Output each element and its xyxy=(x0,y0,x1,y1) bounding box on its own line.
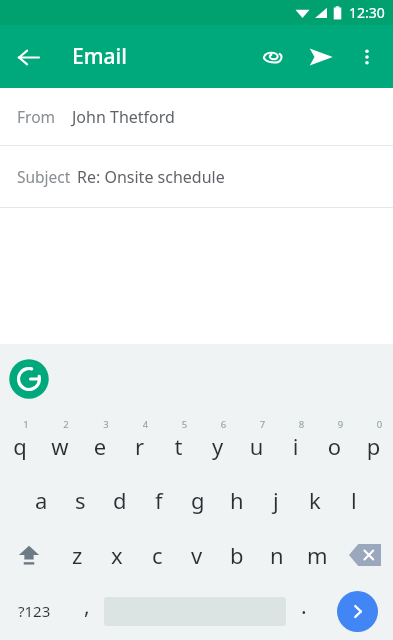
button[interactable]: x xyxy=(97,527,137,582)
staticText: j xyxy=(273,485,279,515)
staticText: y xyxy=(198,431,237,461)
button[interactable]: s xyxy=(61,472,100,527)
staticText: l xyxy=(351,485,357,515)
button[interactable]: d xyxy=(100,472,139,527)
staticText: p xyxy=(354,431,393,461)
button[interactable]: Back xyxy=(0,29,56,85)
button[interactable]: Space xyxy=(104,582,286,640)
button[interactable]: Backspace xyxy=(337,527,393,582)
staticText: 0 xyxy=(360,418,393,431)
staticText: u xyxy=(237,431,276,461)
button[interactable]: 5 xyxy=(159,416,198,472)
staticText: Re: Onsite schedule xyxy=(77,166,225,188)
button[interactable]: 8 xyxy=(276,416,315,472)
staticText: m xyxy=(307,540,328,570)
button[interactable]: Subject xyxy=(0,146,393,207)
staticText: r xyxy=(120,431,159,461)
staticText: From xyxy=(17,106,56,127)
button[interactable]: Grammarly xyxy=(8,358,50,400)
staticText: 7 xyxy=(243,418,282,431)
button[interactable]: Send xyxy=(297,33,345,81)
button[interactable]: b xyxy=(217,527,257,582)
staticText: Subject xyxy=(17,166,71,187)
button[interactable]: c xyxy=(137,527,177,582)
staticText: ?123 xyxy=(18,601,51,621)
button[interactable]: h xyxy=(217,472,256,527)
staticText: 3 xyxy=(86,418,126,431)
staticText: 4 xyxy=(126,418,165,431)
staticText: 12:30 xyxy=(349,3,385,22)
staticText: n xyxy=(270,540,284,570)
button[interactable]: j xyxy=(256,472,295,527)
button[interactable]: 2 xyxy=(40,416,80,472)
button[interactable]: 9 xyxy=(315,416,354,472)
button[interactable]: 0 xyxy=(354,416,393,472)
button[interactable]: m xyxy=(297,527,337,582)
button[interactable]: 1 xyxy=(0,416,40,472)
staticText: i xyxy=(276,431,315,461)
staticText: b xyxy=(230,540,244,570)
staticText: 8 xyxy=(282,418,321,431)
staticText: d xyxy=(113,485,127,515)
button[interactable]: Attach file xyxy=(249,33,297,81)
button[interactable]: 6 xyxy=(198,416,237,472)
staticText: , xyxy=(84,592,90,621)
staticText: 9 xyxy=(321,418,360,431)
staticText: 2 xyxy=(46,418,86,431)
staticText: 5 xyxy=(165,418,204,431)
staticText: Email xyxy=(72,42,127,71)
staticText: q xyxy=(0,431,40,461)
staticText: k xyxy=(309,485,321,515)
staticText: t xyxy=(159,431,198,461)
staticText: s xyxy=(75,485,86,515)
staticText: v xyxy=(191,540,203,570)
button[interactable]: 3 xyxy=(80,416,120,472)
staticText: h xyxy=(230,485,244,515)
staticText: a xyxy=(35,485,48,515)
button[interactable]: More options xyxy=(345,35,389,79)
staticText: John Thetford xyxy=(72,106,175,128)
staticText: f xyxy=(155,485,163,515)
button[interactable]: From xyxy=(0,88,393,145)
staticText: g xyxy=(191,485,205,515)
button[interactable]: a xyxy=(21,472,61,527)
button[interactable]: . xyxy=(286,582,321,640)
button[interactable]: n xyxy=(257,527,297,582)
staticText: . xyxy=(301,592,307,621)
button[interactable]: , xyxy=(69,582,104,640)
button[interactable]: 7 xyxy=(237,416,276,472)
button[interactable]: g xyxy=(178,472,217,527)
button[interactable]: 4 xyxy=(120,416,159,472)
button[interactable]: l xyxy=(334,472,373,527)
staticText: z xyxy=(72,540,83,570)
button[interactable]: ?123 xyxy=(0,582,69,640)
button[interactable]: Enter xyxy=(321,582,393,640)
staticText: 6 xyxy=(204,418,243,431)
staticText: x xyxy=(111,540,123,570)
button[interactable]: k xyxy=(295,472,334,527)
staticText: e xyxy=(80,431,120,461)
button[interactable]: f xyxy=(139,472,178,527)
staticText: w xyxy=(40,431,80,461)
staticText: o xyxy=(315,431,354,461)
staticText: 1 xyxy=(6,418,46,431)
staticText: c xyxy=(152,540,163,570)
button[interactable]: z xyxy=(57,527,97,582)
button[interactable]: v xyxy=(177,527,217,582)
button[interactable]: Shift xyxy=(0,527,57,582)
